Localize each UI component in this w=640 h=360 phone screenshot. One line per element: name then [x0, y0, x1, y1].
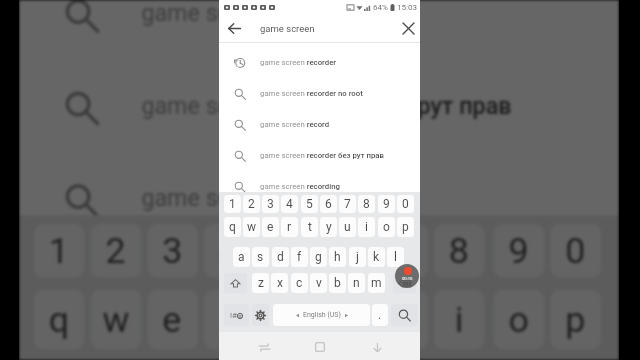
- button[interactable]: Screen recorder: [395, 264, 419, 288]
- button[interactable]: 6: [320, 224, 371, 278]
- button[interactable]: c: [291, 273, 308, 293]
- button[interactable]: 4: [204, 224, 255, 278]
- button[interactable]: 5: [301, 195, 318, 213]
- staticText: w: [103, 299, 132, 340]
- other: Keyboard settings: [255, 310, 266, 321]
- button[interactable]: q: [224, 217, 241, 237]
- button[interactable]: game screen recording: [19, 152, 619, 245]
- button[interactable]: 9: [378, 195, 395, 213]
- button[interactable]: e: [262, 217, 279, 237]
- button[interactable]: game screen recording: [219, 171, 420, 202]
- button[interactable]: .: [372, 304, 388, 326]
- button[interactable]: r: [281, 217, 298, 237]
- button[interactable]: i: [358, 217, 375, 237]
- button[interactable]: 7: [377, 224, 428, 278]
- staticText: m: [371, 276, 382, 290]
- other: Backspace: [398, 277, 411, 290]
- button[interactable]: p: [397, 217, 414, 237]
- staticText: 64%: [373, 3, 388, 12]
- staticText: k: [373, 250, 380, 264]
- button[interactable]: Hide keyboard: [364, 334, 390, 360]
- button[interactable]: m: [368, 273, 385, 293]
- button[interactable]: 7: [339, 195, 356, 213]
- button[interactable]: e: [147, 290, 198, 349]
- button[interactable]: u: [377, 290, 428, 349]
- button[interactable]: 0: [550, 224, 601, 278]
- staticText: e: [267, 220, 274, 234]
- button[interactable]: Home: [307, 334, 333, 360]
- button[interactable]: 3: [147, 224, 198, 278]
- staticText: l: [394, 250, 397, 264]
- button[interactable]: a: [233, 247, 250, 267]
- button[interactable]: v: [310, 273, 327, 293]
- button[interactable]: 3: [262, 195, 279, 213]
- button[interactable]: 9: [494, 224, 544, 278]
- button[interactable]: b: [329, 273, 346, 293]
- staticText: game screen recorder без рут прав: [260, 151, 384, 160]
- button[interactable]: y: [320, 217, 337, 237]
- button[interactable]: t: [264, 290, 314, 349]
- staticText: 6: [335, 230, 356, 272]
- button[interactable]: k: [368, 247, 385, 267]
- button[interactable]: r: [204, 290, 255, 349]
- staticText: 6: [325, 197, 332, 211]
- button[interactable]: p: [550, 290, 601, 349]
- staticText: 2: [106, 230, 126, 272]
- button[interactable]: x: [271, 273, 288, 293]
- button[interactable]: 5: [264, 224, 314, 278]
- staticText: f: [297, 250, 302, 264]
- button[interactable]: w: [91, 290, 141, 349]
- staticText: b: [334, 276, 341, 290]
- button[interactable]: 2: [243, 195, 260, 213]
- button[interactable]: y: [320, 290, 371, 349]
- staticText: game screen recorder: [260, 58, 337, 67]
- button[interactable]: s: [252, 247, 269, 267]
- button[interactable]: d: [272, 247, 289, 267]
- button[interactable]: h: [329, 247, 346, 267]
- button[interactable]: game screen recorder без рут прав: [219, 140, 420, 171]
- button[interactable]: 1: [224, 195, 241, 213]
- button[interactable]: 4: [281, 195, 298, 213]
- button[interactable]: 0: [397, 195, 414, 213]
- button[interactable]: 8: [358, 195, 375, 213]
- button[interactable]: Symbols and emoji: [224, 304, 249, 326]
- button[interactable]: Shift: [224, 273, 247, 293]
- button[interactable]: u: [339, 217, 356, 237]
- button[interactable]: Search: [391, 304, 418, 326]
- button[interactable]: 6: [320, 195, 337, 213]
- staticText: d: [277, 250, 284, 264]
- staticText: 5: [279, 230, 300, 272]
- button[interactable]: g: [310, 247, 327, 267]
- button[interactable]: n: [348, 273, 365, 293]
- button[interactable]: game screen record: [19, 0, 619, 60]
- button[interactable]: game screen recorder no root: [219, 78, 420, 109]
- button[interactable]: w: [243, 217, 260, 237]
- button[interactable]: Back: [219, 14, 249, 42]
- button[interactable]: English (US): [273, 304, 370, 326]
- button[interactable]: j: [349, 247, 366, 267]
- button[interactable]: t: [301, 217, 318, 237]
- button[interactable]: Backspace: [393, 273, 416, 293]
- staticText: 8: [449, 230, 470, 272]
- button[interactable]: 1: [34, 224, 85, 278]
- button[interactable]: z: [252, 273, 269, 293]
- button[interactable]: Clear search: [393, 14, 423, 42]
- button[interactable]: o: [494, 290, 544, 349]
- button[interactable]: Recent apps: [251, 334, 277, 360]
- button[interactable]: 8: [434, 224, 485, 278]
- button[interactable]: f: [291, 247, 308, 267]
- staticText: game screen recorder no root: [260, 89, 363, 98]
- button[interactable]: i: [434, 290, 485, 349]
- button[interactable]: o: [378, 217, 395, 237]
- button[interactable]: q: [34, 290, 85, 349]
- button[interactable]: Keyboard settings: [252, 304, 269, 326]
- button[interactable]: l: [387, 247, 404, 267]
- staticText: !#: [230, 311, 237, 320]
- staticText: p: [402, 220, 409, 234]
- staticText: SRC: [402, 281, 413, 287]
- button[interactable]: game screen recorder без рут прав: [19, 60, 619, 152]
- button[interactable]: game screen recorder: [219, 47, 420, 78]
- button[interactable]: 2: [91, 224, 141, 278]
- button[interactable]: game screen record: [219, 109, 420, 140]
- staticText: o: [383, 220, 390, 234]
